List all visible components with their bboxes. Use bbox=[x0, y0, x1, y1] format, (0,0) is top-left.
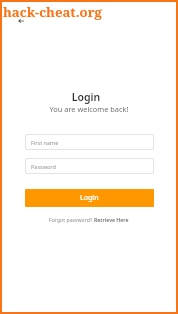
button[interactable]: Back bbox=[14, 14, 28, 28]
staticText: Login bbox=[0, 90, 175, 104]
staticText: hack-cheat.org bbox=[3, 3, 102, 21]
staticText: Login bbox=[80, 193, 99, 203]
button[interactable]: Password bbox=[25, 158, 154, 174]
staticText: Retrieve Here bbox=[94, 216, 129, 223]
staticText: Password bbox=[31, 163, 56, 170]
staticText: Forgot password? bbox=[49, 216, 94, 223]
button[interactable]: Forgot password? bbox=[49, 216, 129, 223]
staticText: You are welcome back! bbox=[0, 104, 178, 114]
button[interactable]: Login bbox=[25, 189, 154, 207]
staticText: First name bbox=[31, 139, 59, 146]
button[interactable]: First name bbox=[25, 134, 154, 150]
